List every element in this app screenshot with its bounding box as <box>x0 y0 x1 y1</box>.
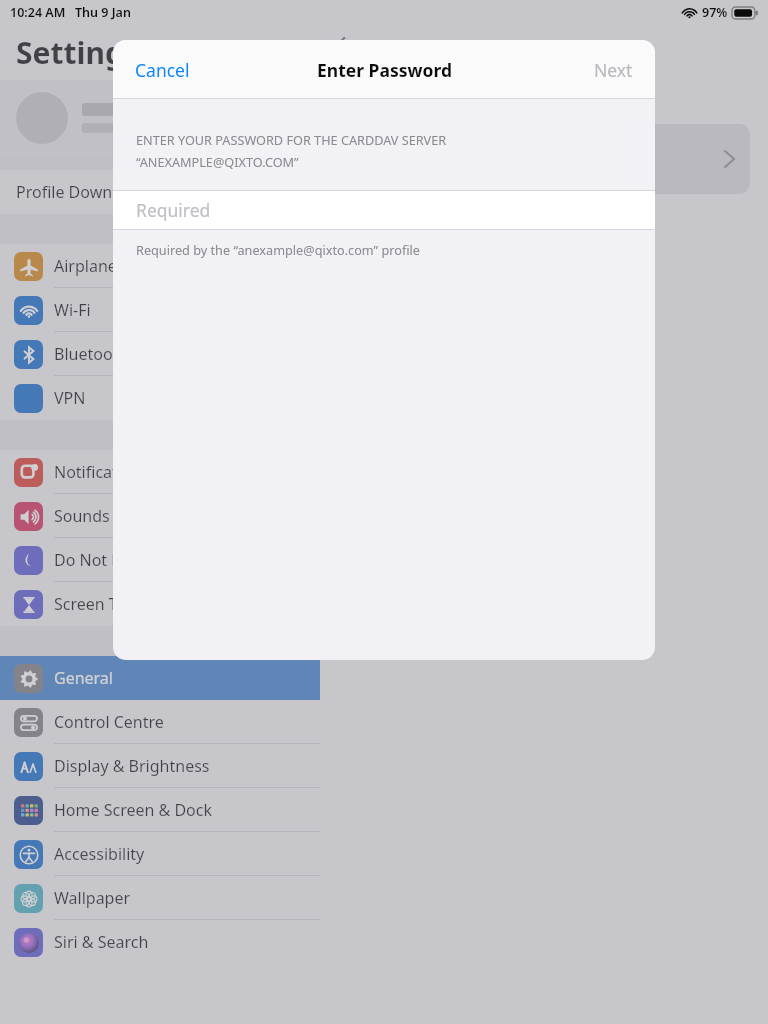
staticText: “ANEXAMPLE@QIXTO.COM” <box>136 153 299 170</box>
button[interactable]: Siri & Search <box>0 920 320 964</box>
button[interactable] <box>338 124 750 194</box>
button[interactable] <box>0 80 320 156</box>
button[interactable]: Required <box>113 191 655 229</box>
button[interactable]: Wallpaper <box>0 876 320 920</box>
button[interactable]: Notifications <box>0 450 320 494</box>
button[interactable]: Screen Time <box>0 582 320 626</box>
button[interactable]: Bluetooth <box>0 332 320 376</box>
staticText: Wallpaper <box>54 887 131 909</box>
button[interactable]: VPN <box>0 376 320 420</box>
staticText: Screen Time <box>54 593 146 615</box>
staticText: Profile Downloaded <box>16 181 164 203</box>
staticText: Sounds <box>54 505 110 527</box>
staticText: Profile <box>547 36 601 59</box>
staticText: VPN <box>54 387 86 409</box>
button[interactable]: Airplane Mode <box>0 244 320 288</box>
staticText: 10:24 AM <box>10 4 66 21</box>
staticText: Do Not Disturb <box>54 549 167 571</box>
button[interactable]: Next <box>572 46 655 94</box>
staticText: Next <box>594 58 633 82</box>
staticText: General <box>54 667 113 689</box>
staticText: Settings <box>16 32 139 73</box>
staticText: Accessibility <box>54 843 145 865</box>
button[interactable]: General <box>0 656 320 700</box>
staticText: Cancel <box>135 58 190 82</box>
staticText: 97% <box>702 4 728 21</box>
staticText: Notifications <box>54 461 150 483</box>
staticText: ENTER YOUR PASSWORD FOR THE CARDDAV SERV… <box>136 131 447 148</box>
staticText: Control Centre <box>54 711 164 733</box>
staticText: Required <box>136 198 211 222</box>
staticText: Enter Password <box>317 58 452 82</box>
staticText: Required by the “anexample@qixto.com” pr… <box>136 241 420 258</box>
button[interactable]: Cancel <box>113 46 212 94</box>
staticText: Bluetooth <box>54 343 129 365</box>
staticText: General <box>351 36 414 59</box>
button[interactable]: Profile Downloaded <box>0 170 320 214</box>
staticText: Thu 9 Jan <box>75 4 131 21</box>
button[interactable]: Display & Brightness <box>0 744 320 788</box>
button[interactable]: Accessibility <box>0 832 320 876</box>
button[interactable]: Control Centre <box>0 700 320 744</box>
staticText: Siri & Search <box>54 931 149 953</box>
button[interactable]: Do Not Disturb <box>0 538 320 582</box>
staticText: Display & Brightness <box>54 755 210 777</box>
button[interactable]: Sounds <box>0 494 320 538</box>
button[interactable]: Home Screen & Dock <box>0 788 320 832</box>
staticText: Wi-Fi <box>54 299 91 321</box>
button[interactable]: Wi-Fi <box>0 288 320 332</box>
staticText: Home Screen & Dock <box>54 799 212 821</box>
staticText: Airplane Mode <box>54 255 165 277</box>
